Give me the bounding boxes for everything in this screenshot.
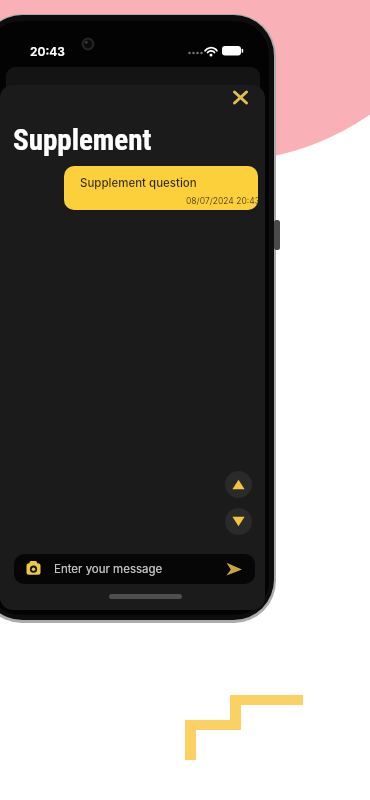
button[interactable] xyxy=(228,85,252,109)
button[interactable]: Supplement question xyxy=(64,166,258,210)
button[interactable] xyxy=(225,471,252,498)
button[interactable]: Enter your message xyxy=(14,554,255,584)
staticText: Supplement question xyxy=(80,176,197,190)
staticText: 08/07/2024 20:43 xyxy=(186,196,258,206)
staticText: 20:43 xyxy=(30,44,65,59)
staticText: Enter your message xyxy=(54,562,163,576)
staticText: Supplement xyxy=(13,123,152,157)
button[interactable] xyxy=(225,508,252,535)
